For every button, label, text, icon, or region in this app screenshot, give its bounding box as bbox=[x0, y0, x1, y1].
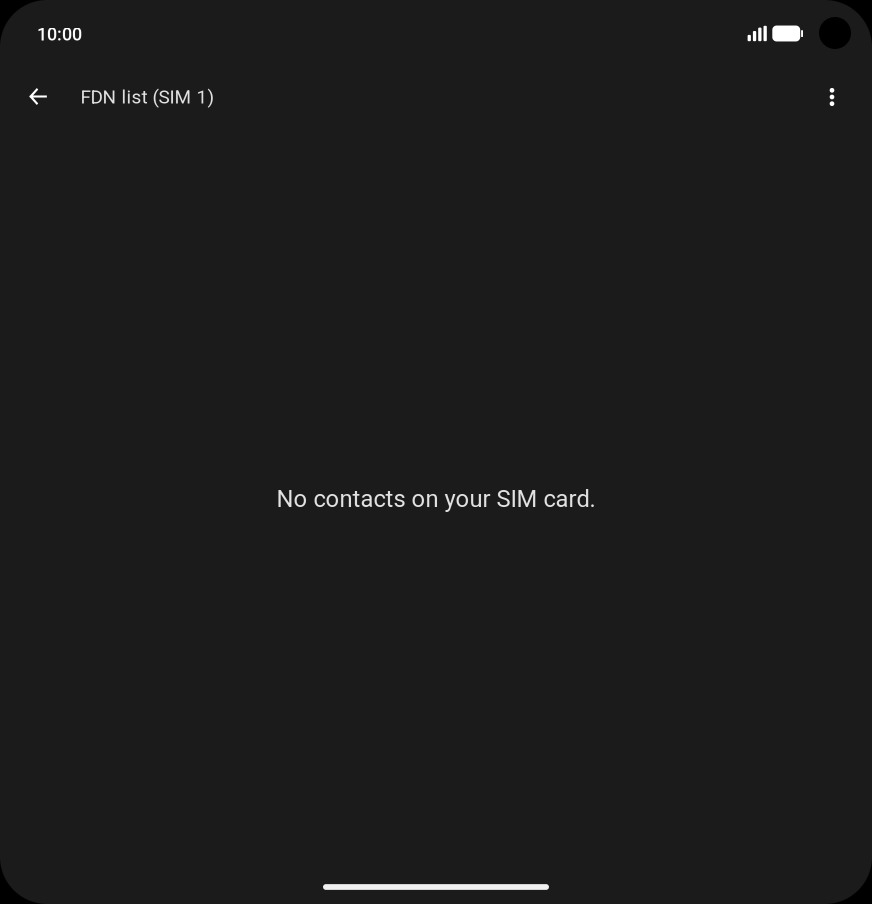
staticText: FDN list (SIM 1) bbox=[80, 86, 214, 108]
staticText: No contacts on your SIM card. bbox=[276, 485, 595, 513]
staticText: 10:00 bbox=[37, 24, 82, 45]
button[interactable]: More options bbox=[808, 73, 856, 121]
button[interactable]: Back bbox=[14, 73, 62, 121]
